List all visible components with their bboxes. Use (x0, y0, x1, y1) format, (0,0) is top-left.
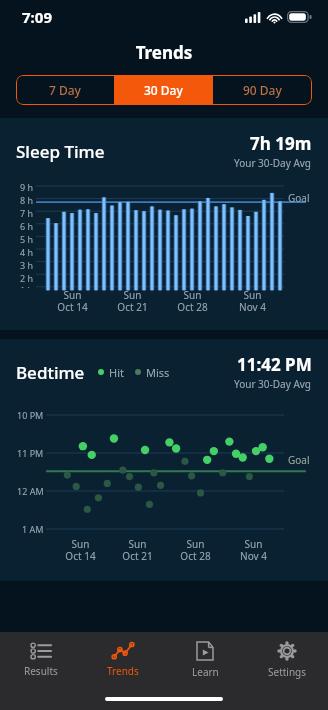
staticText: Miss (146, 365, 170, 380)
staticText: 7 h (20, 207, 34, 219)
staticText: 90 Day (243, 82, 282, 98)
staticText: Sun Oct 14 (57, 288, 88, 314)
staticText: Sun Oct 14 (65, 537, 96, 563)
staticText: 4 h (20, 246, 34, 258)
staticText: Sleep Time (16, 140, 105, 163)
button[interactable]: Trends (82, 632, 164, 688)
staticText: 7:09 (22, 7, 52, 27)
staticText: Your 30-Day Avg (234, 377, 312, 391)
button[interactable]: 7 Day (16, 75, 114, 105)
staticText: 7h 19m (250, 132, 312, 155)
staticText: 2 h (20, 272, 34, 284)
staticText: Goal (288, 191, 310, 205)
staticText: Bedtime (16, 361, 85, 384)
staticText: Trends (0, 41, 328, 64)
staticText: 6 h (20, 220, 34, 232)
staticText: Your 30-Day Avg (234, 156, 312, 170)
button[interactable]: Results (0, 632, 82, 688)
staticText: 7 Day (49, 82, 81, 98)
staticText: Results (24, 664, 58, 678)
staticText: Sun Nov 4 (239, 288, 266, 314)
staticText: 1 AM (22, 523, 44, 535)
staticText: 1 h (20, 284, 34, 288)
staticText: Sun Nov 4 (240, 537, 267, 563)
staticText: 3 h (20, 259, 34, 271)
staticText: 8 h (20, 194, 34, 206)
staticText: 10 PM (17, 409, 44, 421)
staticText: Settings (268, 665, 307, 679)
staticText: 9 h (20, 181, 34, 193)
staticText: Goal (288, 453, 310, 467)
staticText: Trends (107, 664, 139, 678)
staticText: Learn (192, 665, 219, 679)
staticText: 5 h (20, 233, 34, 245)
button[interactable]: Settings (246, 632, 328, 688)
staticText: Sun Oct 28 (177, 288, 208, 314)
button[interactable]: 90 Day (213, 75, 312, 105)
staticText: 30 Day (144, 82, 183, 98)
staticText: 11:42 PM (237, 353, 312, 376)
staticText: 12 AM (17, 485, 44, 497)
staticText: Sun Oct 21 (117, 288, 148, 314)
staticText: Sun Oct 28 (180, 537, 211, 563)
staticText: Hit (109, 365, 124, 380)
button[interactable]: Learn (164, 632, 246, 688)
staticText: Sun Oct 21 (122, 537, 153, 563)
button[interactable]: 30 Day (114, 75, 213, 105)
staticText: 11 PM (17, 447, 44, 459)
